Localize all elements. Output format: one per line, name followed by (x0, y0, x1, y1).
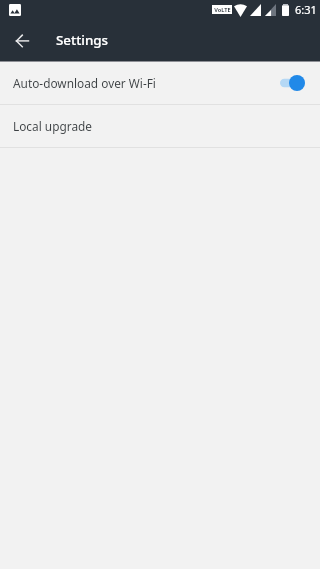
staticText: 6:31 (295, 2, 317, 17)
button[interactable]: Local upgrade (0, 105, 320, 147)
staticText: Auto-download over Wi-Fi (13, 75, 156, 91)
button[interactable]: Auto-download over Wi-Fi (0, 62, 320, 104)
staticText: VoLTE (214, 6, 231, 14)
button[interactable]: Back (10, 28, 35, 53)
staticText: Local upgrade (13, 118, 92, 134)
staticText: Settings (56, 31, 109, 49)
